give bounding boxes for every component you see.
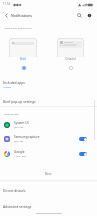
button[interactable]: Advanced settings (0, 200, 97, 212)
button[interactable]: Brief (18, 62, 29, 73)
button[interactable]: Detailed (65, 62, 76, 73)
button[interactable] (9, 38, 37, 57)
staticText: Brief (20, 57, 26, 61)
staticText: Detailed (65, 57, 76, 61)
button[interactable]: Navigate up (1, 10, 12, 21)
button[interactable]: Help (84, 10, 95, 21)
button[interactable]: Samsung capture (0, 132, 97, 146)
staticText: Do not disturb (3, 188, 26, 192)
staticText: Brief pop-up settings (3, 99, 36, 103)
staticText: 1 hour ago (14, 155, 26, 158)
staticText: Samsung capture (14, 135, 40, 139)
staticText: Advanced settings (3, 204, 32, 208)
staticText: Notification pop-up style (4, 26, 32, 29)
staticText: 11:14 (3, 2, 10, 6)
button[interactable]: Google (0, 147, 97, 161)
staticText: Included apps (3, 80, 25, 84)
button[interactable]: Do not disturb (0, 184, 97, 196)
staticText: Google (14, 150, 25, 154)
staticText: Notifications (11, 13, 32, 18)
staticText: Just now (14, 126, 24, 129)
button[interactable]: Search (74, 10, 85, 21)
staticText: All apps (3, 86, 11, 89)
button[interactable]: Included apps (0, 76, 97, 93)
button[interactable]: Toggle Google notifications (79, 152, 87, 156)
button[interactable]: System UI (0, 118, 97, 132)
staticText: Recently sent (4, 112, 19, 115)
button[interactable]: Brief pop-up settings (0, 95, 97, 106)
button[interactable] (57, 38, 84, 57)
staticText: System UI (14, 121, 29, 125)
button[interactable]: More (40, 170, 57, 178)
staticText: Just now (14, 140, 24, 143)
button[interactable]: Toggle Samsung capture notifications (79, 137, 87, 141)
staticText: More (45, 172, 52, 176)
